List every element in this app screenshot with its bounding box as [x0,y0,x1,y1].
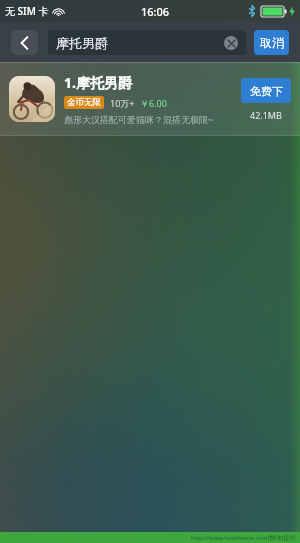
staticText: 彪形大汉搭配可爱猫咪？混搭无极限~ [64,113,214,125]
staticText: ￥6.00 [140,97,167,109]
staticText: 42.1MB [250,109,282,121]
staticText: 1.摩托男爵 [64,73,132,92]
staticText: 免费下 [250,84,283,98]
staticText: 无 SIM 卡 [5,4,49,18]
staticText: 16:06 [141,4,170,19]
button[interactable]: 1.摩托男爵 [0,63,300,135]
staticText: 10万+ [110,97,135,109]
staticText: http://www.hackhome.com[网侠]提供 [191,534,296,542]
button[interactable]: 免费下 [241,78,291,103]
button[interactable]: 取消 [254,30,289,55]
staticText: 金币无限 [67,97,101,108]
button[interactable]: 摩托男爵 [48,30,246,55]
staticText: 取消 [260,35,284,50]
staticText: 摩托男爵 [56,35,108,51]
button[interactable]: Back [11,30,38,55]
button[interactable]: Clear [224,36,238,50]
